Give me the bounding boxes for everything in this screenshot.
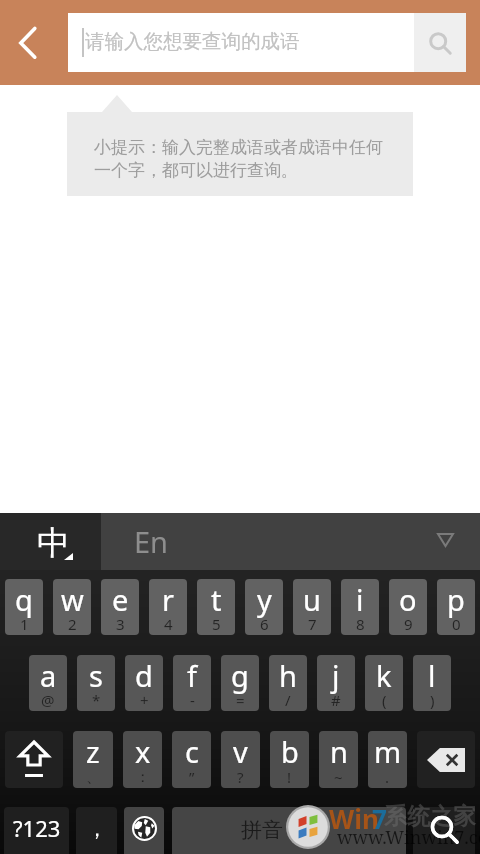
button[interactable]: m <box>368 731 407 788</box>
staticText: 2 <box>68 614 77 634</box>
button[interactable]: t <box>197 579 235 635</box>
staticText: n <box>330 732 348 771</box>
staticText: e <box>112 580 129 619</box>
button[interactable]: w <box>53 579 91 635</box>
staticText: 系统之家 <box>384 802 476 831</box>
button[interactable]: v <box>221 731 260 788</box>
staticText: - <box>190 690 195 710</box>
staticText: s <box>89 656 103 695</box>
staticText: m <box>374 732 402 771</box>
staticText: y <box>257 580 272 619</box>
button[interactable]: Change language <box>124 807 164 854</box>
button[interactable]: i <box>341 579 379 635</box>
button[interactable]: ?123 <box>4 807 69 854</box>
button[interactable]: En <box>101 513 480 570</box>
staticText: b <box>281 732 299 771</box>
button[interactable]: Search <box>414 13 466 72</box>
staticText: i <box>356 580 364 619</box>
staticText: ?123 <box>13 813 61 843</box>
button[interactable]: a <box>29 655 67 711</box>
staticText: 5 <box>212 614 221 634</box>
staticText: ： <box>135 768 150 787</box>
staticText: 拼音 <box>241 817 283 843</box>
staticText: 9 <box>404 614 413 634</box>
button[interactable]: p <box>437 579 475 635</box>
staticText: k <box>376 656 392 695</box>
staticText: Win <box>329 801 379 836</box>
staticText: ~ <box>334 767 343 787</box>
button[interactable]: b <box>270 731 309 788</box>
button[interactable]: l <box>413 655 451 711</box>
button[interactable]: x <box>123 731 162 788</box>
staticText: + <box>140 690 149 710</box>
staticText: 4 <box>164 614 173 634</box>
staticText: 3 <box>116 614 125 634</box>
button[interactable]: e <box>101 579 139 635</box>
staticText: 7 <box>308 614 317 634</box>
button[interactable]: z <box>73 731 113 788</box>
staticText: l <box>428 656 436 695</box>
staticText: a <box>40 656 57 695</box>
staticText: j <box>332 656 340 695</box>
button[interactable]: u <box>293 579 331 635</box>
button[interactable]: k <box>365 655 403 711</box>
staticText: x <box>135 732 151 771</box>
staticText: d <box>135 656 153 695</box>
staticText: ” <box>189 767 195 787</box>
staticText: z <box>86 732 100 771</box>
staticText: w <box>61 580 84 619</box>
button[interactable]: ， <box>76 807 117 854</box>
staticText: u <box>303 580 321 619</box>
staticText: # <box>331 690 341 710</box>
staticText: ? <box>237 767 244 787</box>
staticText: g <box>231 656 249 695</box>
staticText: www.Winwin7.com <box>337 825 480 850</box>
staticText: q <box>15 580 33 619</box>
staticText: o <box>399 580 417 619</box>
staticText: 1 <box>20 614 29 634</box>
staticText: 6 <box>260 614 269 634</box>
staticText: 小提示：输入完整成语或者成语中任何一个字，都可以进行查询。 <box>94 137 386 181</box>
staticText: En <box>134 522 169 561</box>
button[interactable]: g <box>221 655 259 711</box>
button[interactable]: 拼音 <box>172 807 406 854</box>
button[interactable]: c <box>172 731 211 788</box>
button[interactable]: n <box>319 731 358 788</box>
staticText: @ <box>41 690 55 710</box>
button[interactable]: Backspace <box>417 731 475 788</box>
button[interactable]: o <box>389 579 427 635</box>
staticText: 请输入您想要查询的成语 <box>85 29 300 54</box>
staticText: c <box>185 732 199 771</box>
staticText: r <box>162 580 174 619</box>
staticText: . <box>385 767 390 787</box>
staticText: 中 <box>37 522 70 564</box>
button[interactable]: j <box>317 655 355 711</box>
staticText: 7 <box>372 801 387 836</box>
staticText: 0 <box>452 614 461 634</box>
staticText: ! <box>287 767 292 787</box>
staticText: ， <box>87 817 107 842</box>
staticText: t <box>211 580 222 619</box>
button[interactable]: q <box>5 579 43 635</box>
staticText: ) <box>430 690 435 710</box>
button[interactable]: Shift <box>5 731 63 788</box>
staticText: * <box>92 690 101 710</box>
staticText: 8 <box>356 614 365 634</box>
staticText: f <box>187 656 197 695</box>
button[interactable]: s <box>77 655 115 711</box>
staticText: p <box>447 580 465 619</box>
button[interactable]: r <box>149 579 187 635</box>
staticText: / <box>285 690 291 710</box>
staticText: v <box>233 732 248 771</box>
button[interactable]: f <box>173 655 211 711</box>
staticText: = <box>236 690 245 710</box>
button[interactable]: Search <box>413 807 475 854</box>
button[interactable]: 中 <box>0 513 101 570</box>
button[interactable]: d <box>125 655 163 711</box>
button[interactable]: Back <box>0 0 68 85</box>
button[interactable]: y <box>245 579 283 635</box>
staticText: h <box>279 656 297 695</box>
button[interactable]: h <box>269 655 307 711</box>
staticText: ( <box>382 690 387 710</box>
